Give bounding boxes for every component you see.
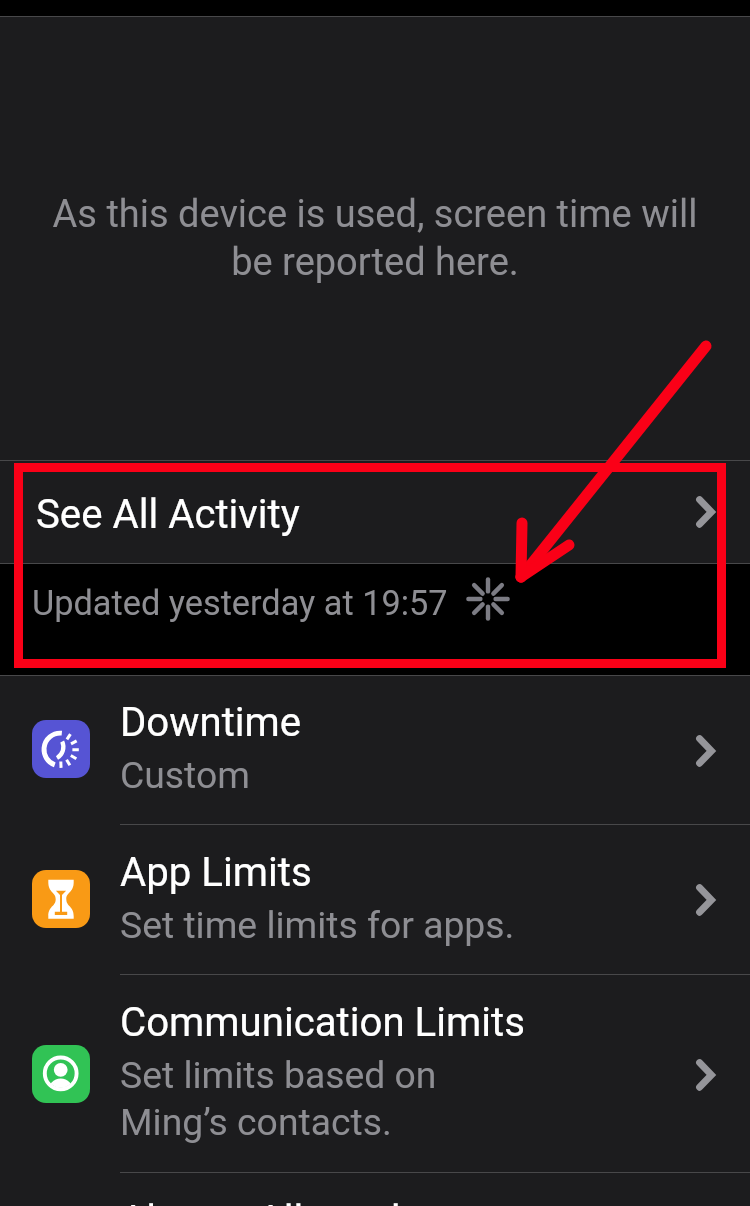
staticText: Set limits based on	[120, 1053, 437, 1097]
button[interactable]: Always Allowed	[0, 1173, 750, 1206]
other: Open	[696, 884, 716, 916]
staticText: Downtime	[120, 699, 302, 746]
button[interactable]: Communication Limits	[0, 975, 750, 1173]
other: Open	[696, 735, 716, 767]
button[interactable]: Downtime	[0, 676, 750, 825]
other: Open	[696, 496, 716, 528]
button[interactable]: See All Activity	[0, 461, 750, 563]
staticText: Ming’s contacts.	[120, 1100, 392, 1144]
button[interactable]: App Limits	[0, 825, 750, 974]
staticText: be reported here.	[0, 240, 750, 285]
staticText: App Limits	[120, 849, 312, 896]
staticText: See All Activity	[36, 491, 300, 538]
staticText: Communication Limits	[120, 999, 525, 1046]
staticText: Custom	[120, 753, 250, 797]
staticText: As this device is used, screen time will	[0, 192, 750, 237]
staticText: Always Allowed	[120, 1197, 401, 1206]
other: Open	[696, 1059, 716, 1091]
staticText: Set time limits for apps.	[120, 903, 515, 947]
staticText: Updated yesterday at 19:57	[32, 583, 448, 623]
